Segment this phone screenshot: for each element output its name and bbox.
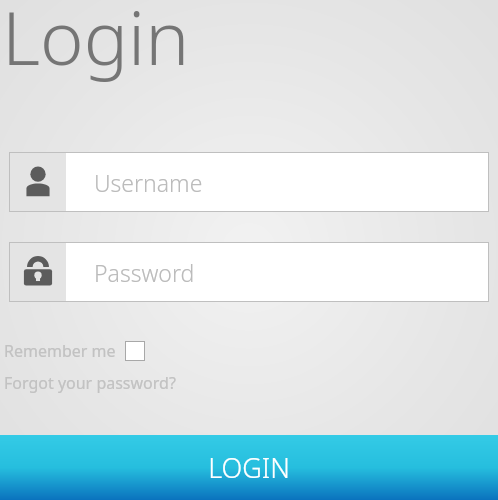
staticText: LOGIN xyxy=(208,449,290,486)
button[interactable]: Password xyxy=(9,242,489,302)
button[interactable]: Forgot your password? xyxy=(4,371,176,395)
staticText: Forgot your password? xyxy=(4,372,176,394)
other: Password xyxy=(22,255,54,289)
staticText: Username xyxy=(94,167,203,198)
other: Username xyxy=(21,165,55,199)
staticText: Password xyxy=(94,257,195,288)
staticText: Login xyxy=(2,0,190,87)
button[interactable]: Username xyxy=(9,152,489,212)
button[interactable]: LOGIN xyxy=(0,435,498,500)
staticText: Remember me xyxy=(4,340,116,362)
button[interactable]: Remember me xyxy=(4,338,145,364)
